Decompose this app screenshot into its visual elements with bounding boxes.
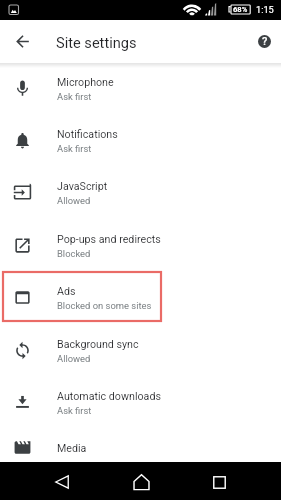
button[interactable]: Notifications bbox=[0, 115, 281, 167]
staticText: Blocked bbox=[57, 248, 91, 259]
staticText: Automatic downloads bbox=[57, 390, 161, 403]
staticText: 68% bbox=[233, 5, 248, 14]
staticText: 1:15 bbox=[256, 4, 274, 15]
staticText: Microphone bbox=[57, 76, 114, 89]
staticText: Background sync bbox=[57, 338, 139, 351]
button[interactable]: Microphone bbox=[0, 63, 281, 115]
button[interactable]: Back bbox=[48, 462, 76, 500]
staticText: Ask first bbox=[57, 91, 92, 102]
button[interactable]: Automatic downloads bbox=[0, 377, 281, 429]
staticText: Site settings bbox=[56, 34, 137, 51]
staticText: Media bbox=[57, 442, 87, 455]
staticText: Notifications bbox=[57, 128, 118, 141]
button[interactable]: Recent apps bbox=[205, 462, 233, 500]
staticText: Ask first bbox=[57, 143, 92, 154]
staticText: Ads bbox=[57, 285, 76, 298]
staticText: ? bbox=[262, 35, 268, 48]
button[interactable]: Pop-ups and redirects bbox=[0, 220, 281, 272]
staticText: Allowed bbox=[57, 353, 91, 364]
button[interactable]: Navigate up bbox=[0, 20, 45, 63]
staticText: Pop-ups and redirects bbox=[57, 233, 161, 246]
button[interactable]: Help and feedback bbox=[247, 20, 281, 63]
button[interactable]: Media bbox=[0, 429, 281, 481]
button[interactable]: JavaScript bbox=[0, 167, 281, 219]
button[interactable]: Home bbox=[127, 462, 155, 500]
button[interactable]: Ads bbox=[0, 272, 281, 324]
staticText: Ask first bbox=[57, 405, 92, 416]
staticText: Blocked on some sites bbox=[57, 300, 152, 311]
button[interactable]: Background sync bbox=[0, 325, 281, 377]
staticText: Allowed bbox=[57, 195, 91, 206]
staticText: JavaScript bbox=[57, 180, 108, 193]
